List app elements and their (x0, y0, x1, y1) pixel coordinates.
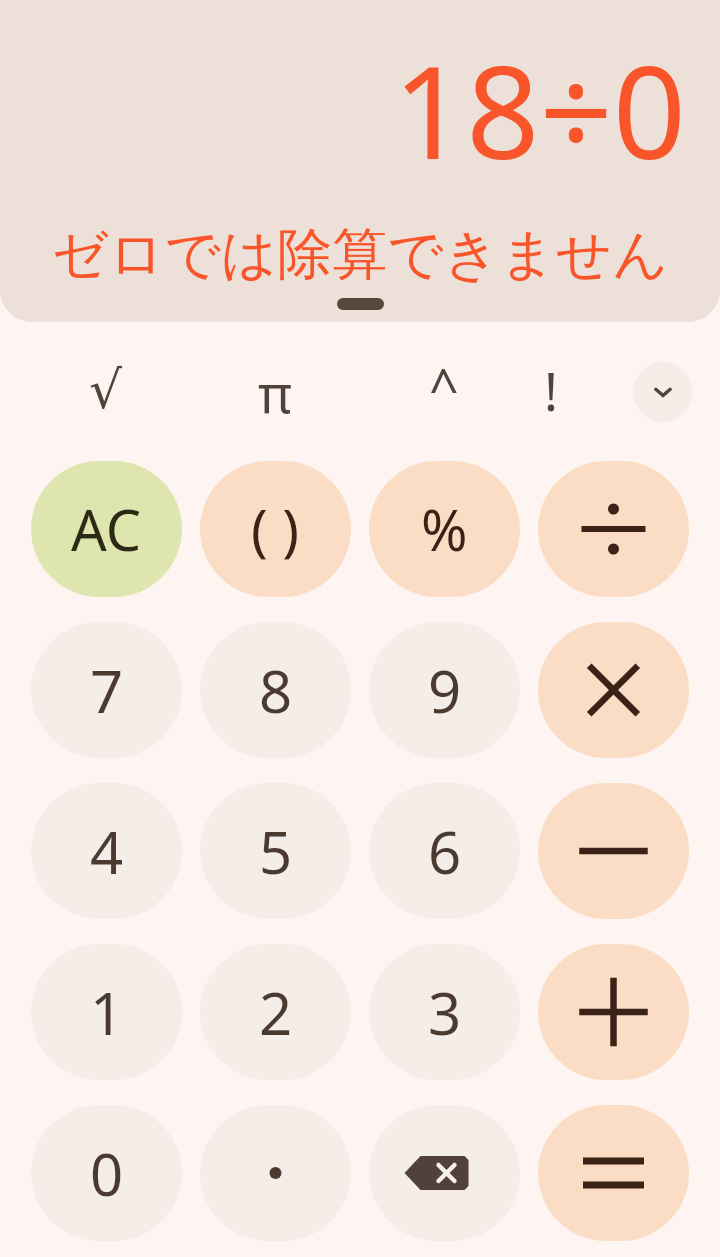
staticText: 0 (90, 1134, 124, 1213)
staticText: ^ (429, 351, 459, 422)
button[interactable]: ^ (399, 350, 489, 422)
staticText: ( ) (251, 491, 300, 567)
button[interactable]: 8 (200, 622, 351, 758)
button[interactable]: % (369, 461, 520, 597)
button[interactable]: 0 (31, 1105, 182, 1241)
staticText: 6 (428, 812, 462, 891)
button[interactable]: Equals (538, 1105, 689, 1241)
button[interactable]: Multiply (538, 622, 689, 758)
button[interactable]: More functions (633, 362, 693, 422)
staticText: 2 (259, 973, 293, 1052)
staticText: 18÷0 (393, 22, 686, 182)
button[interactable]: Backspace (369, 1105, 520, 1241)
button[interactable]: 5 (200, 783, 351, 919)
staticText: 7 (90, 651, 124, 730)
button[interactable]: √ (61, 354, 151, 426)
staticText: % (421, 491, 468, 567)
staticText: √ (89, 360, 123, 421)
button[interactable]: Minus (538, 783, 689, 919)
button[interactable]: Plus (538, 944, 689, 1080)
button[interactable]: 3 (369, 944, 520, 1080)
staticText: AC (71, 491, 142, 567)
staticText: 3 (428, 973, 462, 1052)
staticText: 8 (259, 651, 293, 730)
staticText: 5 (259, 812, 293, 891)
staticText: ゼロでは除算できません (52, 220, 669, 289)
button[interactable]: 9 (369, 622, 520, 758)
staticText: 4 (90, 812, 124, 891)
staticText: ! (544, 355, 558, 426)
button[interactable]: Decimal point (200, 1105, 351, 1241)
button[interactable]: 7 (31, 622, 182, 758)
button[interactable]: ( ) (200, 461, 351, 597)
button[interactable]: Expand history (337, 298, 384, 310)
staticText: 1 (90, 973, 124, 1052)
button[interactable]: 1 (31, 944, 182, 1080)
button[interactable]: Divide (538, 461, 689, 597)
button[interactable]: ! (506, 354, 596, 426)
staticText: 9 (428, 651, 462, 730)
button[interactable]: 6 (369, 783, 520, 919)
button[interactable]: π (230, 356, 320, 428)
button[interactable]: 2 (200, 944, 351, 1080)
button[interactable]: AC (31, 461, 182, 597)
button[interactable]: 4 (31, 783, 182, 919)
staticText: π (258, 357, 292, 428)
